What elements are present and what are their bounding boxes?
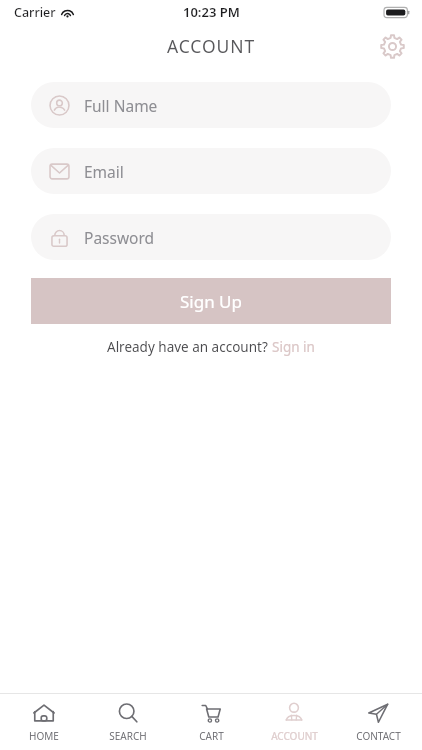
- button[interactable]: Sign Up: [31, 278, 391, 324]
- button[interactable]: HOME: [5, 696, 83, 749]
- staticText: Password: [84, 227, 155, 248]
- staticText: Full Name: [84, 95, 158, 116]
- staticText: CART: [199, 729, 224, 743]
- staticText: Email: [84, 161, 124, 182]
- button[interactable]: SEARCH: [89, 696, 167, 749]
- button[interactable]: CONTACT: [339, 696, 417, 749]
- staticText: ACCOUNT: [271, 729, 318, 743]
- staticText: SEARCH: [109, 729, 147, 743]
- staticText: Already have an account?: [107, 338, 272, 356]
- staticText: Sign Up: [180, 290, 242, 313]
- staticText: 10:23 PM: [183, 3, 240, 21]
- button[interactable]: Settings: [372, 26, 412, 66]
- button[interactable]: Sign in: [272, 338, 315, 356]
- staticText: CONTACT: [356, 729, 401, 743]
- button[interactable]: Full Name: [31, 82, 391, 128]
- button[interactable]: ACCOUNT: [255, 696, 333, 749]
- button[interactable]: Email: [31, 148, 391, 194]
- button[interactable]: CART: [172, 696, 250, 749]
- staticText: Carrier: [14, 4, 56, 21]
- staticText: HOME: [29, 729, 59, 743]
- button[interactable]: Password: [31, 214, 391, 260]
- staticText: ACCOUNT: [167, 34, 256, 58]
- staticText: Sign in: [272, 338, 315, 356]
